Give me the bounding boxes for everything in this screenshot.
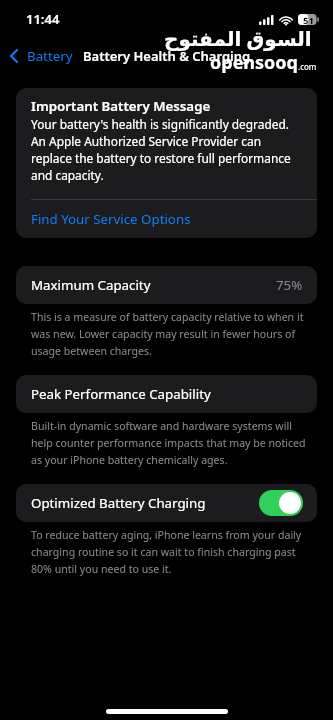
staticText: Battery — [27, 47, 73, 65]
button[interactable]: Find Your Service Options — [16, 200, 317, 238]
staticText: 75% — [276, 276, 303, 294]
staticText: opensooq — [210, 50, 298, 75]
staticText: 51 — [303, 14, 314, 25]
staticText: Peak Performance Capability — [31, 385, 211, 403]
staticText: .com — [298, 61, 317, 72]
button[interactable]: Optimized Battery Charging toggle — [259, 490, 303, 516]
staticText: Your battery's health is significantly d… — [31, 116, 291, 183]
staticText: Optimized Battery Charging — [31, 494, 206, 512]
staticText: Battery Health & Charging — [83, 47, 251, 65]
staticText: Important Battery Message — [31, 97, 211, 115]
button[interactable]: Back — [0, 41, 79, 71]
button[interactable]: Optimized Battery Charging — [16, 484, 317, 522]
staticText: To reduce battery aging, iPhone learns f… — [31, 528, 302, 576]
staticText: This is a measure of battery capacity re… — [31, 310, 304, 358]
staticText: السوق المفتوح — [164, 25, 312, 52]
button[interactable]: Peak Performance Capability — [16, 375, 317, 413]
staticText: Find Your Service Options — [31, 210, 191, 228]
button[interactable]: Maximum Capacity — [16, 266, 317, 304]
staticText: Maximum Capacity — [31, 276, 151, 294]
staticText: 11:44 — [26, 10, 60, 28]
other: Back — [10, 49, 18, 63]
staticText: Built-in dynamic software and hardware s… — [31, 419, 306, 467]
